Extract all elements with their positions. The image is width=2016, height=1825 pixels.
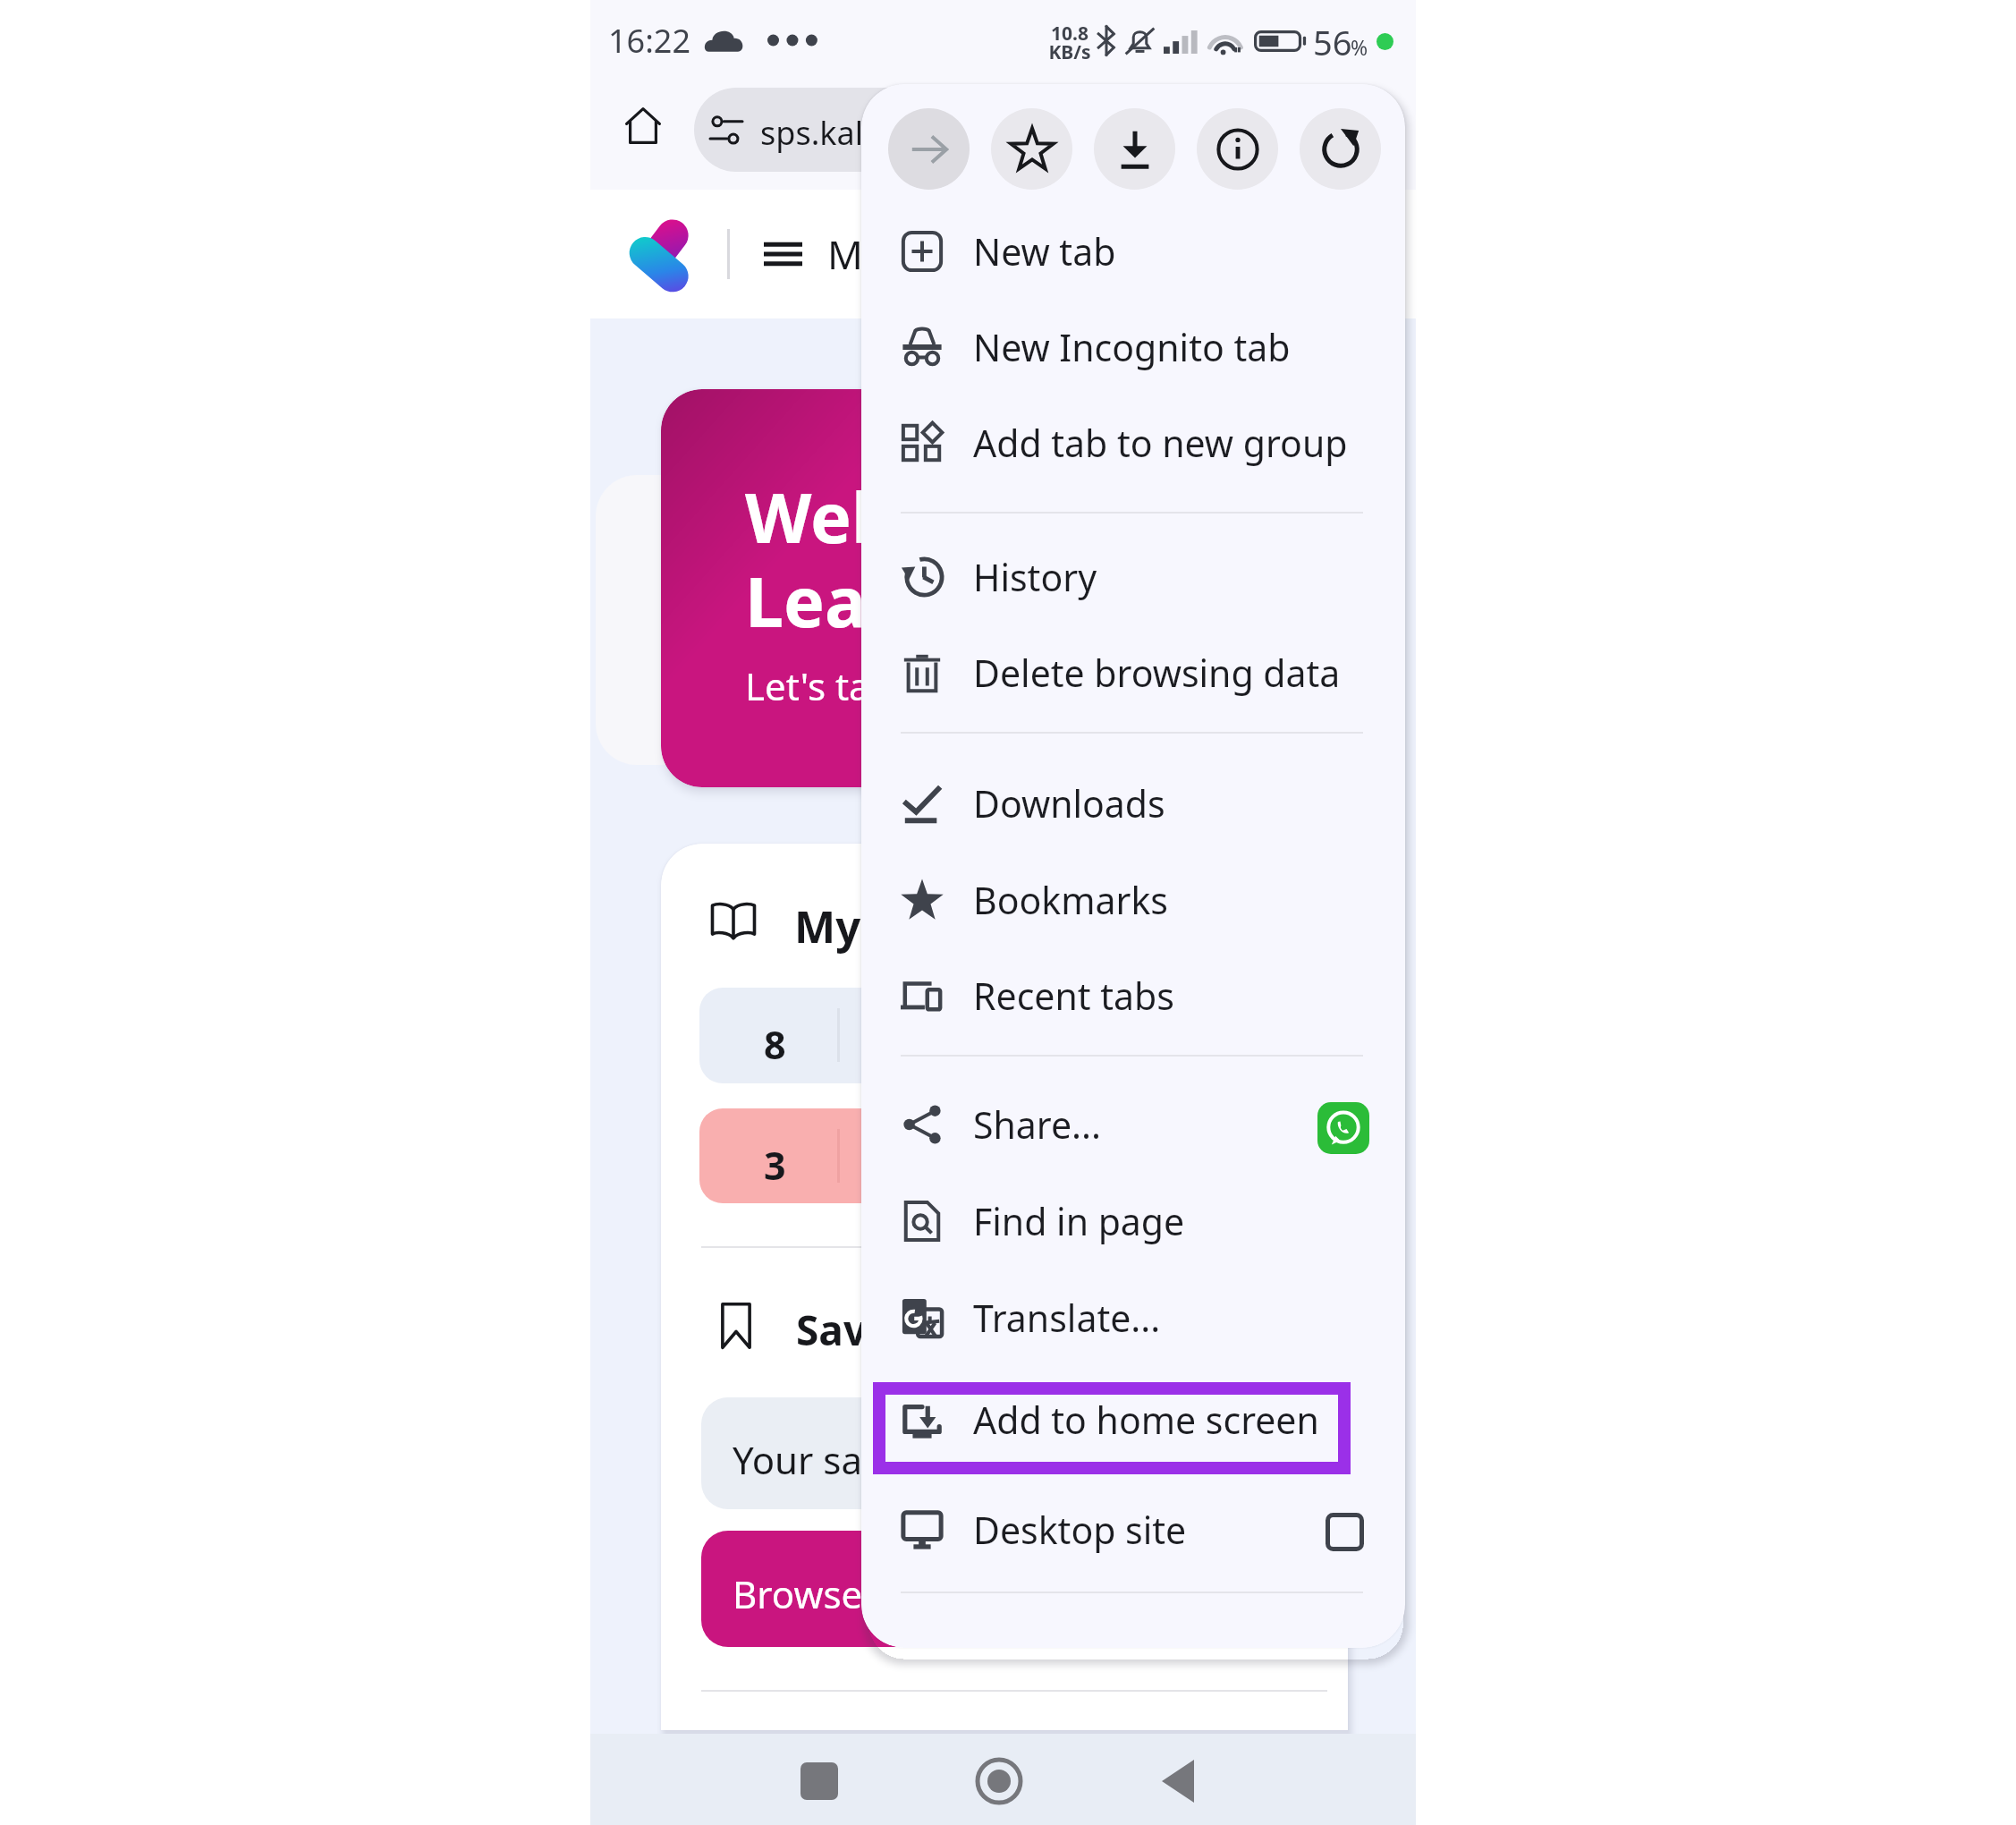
button[interactable]: Downloads [861,756,1405,851]
button[interactable]: Recent tabs [861,948,1405,1043]
button[interactable]: Add to home screen [861,1372,1405,1467]
staticText: Share... [973,1099,1102,1150]
button[interactable]: Bookmark [991,108,1072,190]
button[interactable]: Share via WhatsApp [1317,1102,1369,1154]
staticText: New Incognito tab [973,322,1291,372]
staticText: 8 [764,1018,786,1071]
staticText: Downloads [973,778,1165,828]
button[interactable]: 8 [699,988,1348,1083]
staticText: 16:22 [608,19,691,63]
button[interactable]: New tab [861,204,1405,299]
staticText: Welcome to [745,470,1150,564]
button[interactable]: Menu [764,190,935,318]
button[interactable]: Back [1142,1745,1214,1817]
staticText: sps.kallidus-suite.com [760,111,1093,155]
button[interactable]: Add tab to new group [861,395,1405,490]
staticText: History [973,552,1097,602]
button[interactable]: sps.kallidus-suite.com [694,88,1401,172]
button[interactable]: Share... [861,1077,1405,1172]
staticText: 10.8 [1046,21,1093,47]
staticText: Browse all courses [733,1568,1060,1619]
button[interactable]: Translate... [861,1270,1405,1365]
staticText: Find in page [973,1196,1185,1246]
button[interactable]: Find in page [861,1174,1405,1269]
button[interactable]: Desktop site toggle [1326,1513,1364,1551]
staticText: Delete browsing data [973,648,1341,698]
button[interactable]: Download [1094,108,1175,190]
button[interactable]: Delete browsing data [861,625,1405,720]
staticText: Recent tabs [973,971,1174,1021]
button[interactable]: History [861,530,1405,624]
staticText: Bookmarks [973,875,1168,925]
button[interactable]: Recents [784,1745,855,1817]
staticText: Learning [745,554,1051,648]
staticText: KB/s [1046,39,1093,65]
staticText: Saved [796,1302,918,1358]
staticText: 3 [764,1139,786,1192]
staticText: Menu [827,227,935,281]
button[interactable]: Browse all courses [701,1531,1348,1647]
button[interactable]: Home [963,1745,1035,1817]
staticText: % [1351,33,1368,61]
button[interactable]: Bookmarks [861,853,1405,947]
staticText: Desktop site [973,1505,1187,1555]
button[interactable]: Desktop site [861,1482,1405,1577]
button[interactable]: Forward [888,108,970,190]
button[interactable]: Reload [1300,108,1381,190]
button[interactable]: Page info [1197,108,1278,190]
button[interactable]: New Incognito tab [861,300,1405,395]
button[interactable]: Kallidus home [629,213,690,296]
staticText: Let's take a look [745,660,1028,711]
staticText: New tab [973,226,1116,276]
staticText: Add tab to new group [973,418,1348,468]
button[interactable]: Home [607,89,679,161]
staticText: Translate... [973,1293,1161,1343]
staticText: Add to home screen [973,1395,1319,1445]
staticText: 56 [1313,19,1352,65]
staticText: My Learning [794,896,1067,956]
staticText: Your saved courses [733,1434,1072,1485]
